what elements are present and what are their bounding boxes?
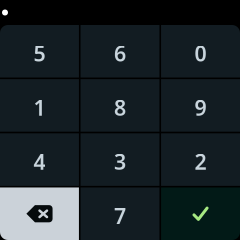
button[interactable]: 3 (80, 133, 159, 186)
staticText: 3 (114, 147, 126, 176)
staticText: 7 (114, 202, 126, 230)
staticText: 6 (114, 39, 126, 67)
button[interactable]: 9 (161, 79, 240, 132)
staticText: 4 (33, 147, 45, 176)
staticText: 5 (33, 39, 45, 67)
staticText: 1 (33, 93, 45, 122)
staticText: 0 (194, 39, 206, 67)
staticText: 2 (194, 147, 206, 176)
button[interactable]: 6 (80, 25, 159, 77)
button[interactable]: Delete (0, 187, 79, 240)
button[interactable]: 0 (161, 25, 240, 77)
staticText: 9 (194, 93, 206, 122)
button[interactable]: 5 (0, 25, 79, 77)
button[interactable]: 8 (80, 79, 159, 132)
button[interactable]: 7 (80, 187, 159, 240)
button[interactable]: 2 (161, 133, 240, 186)
button[interactable]: Confirm (161, 187, 240, 240)
staticText: 8 (114, 93, 126, 122)
button[interactable]: 4 (0, 133, 79, 186)
button[interactable]: 1 (0, 79, 79, 132)
